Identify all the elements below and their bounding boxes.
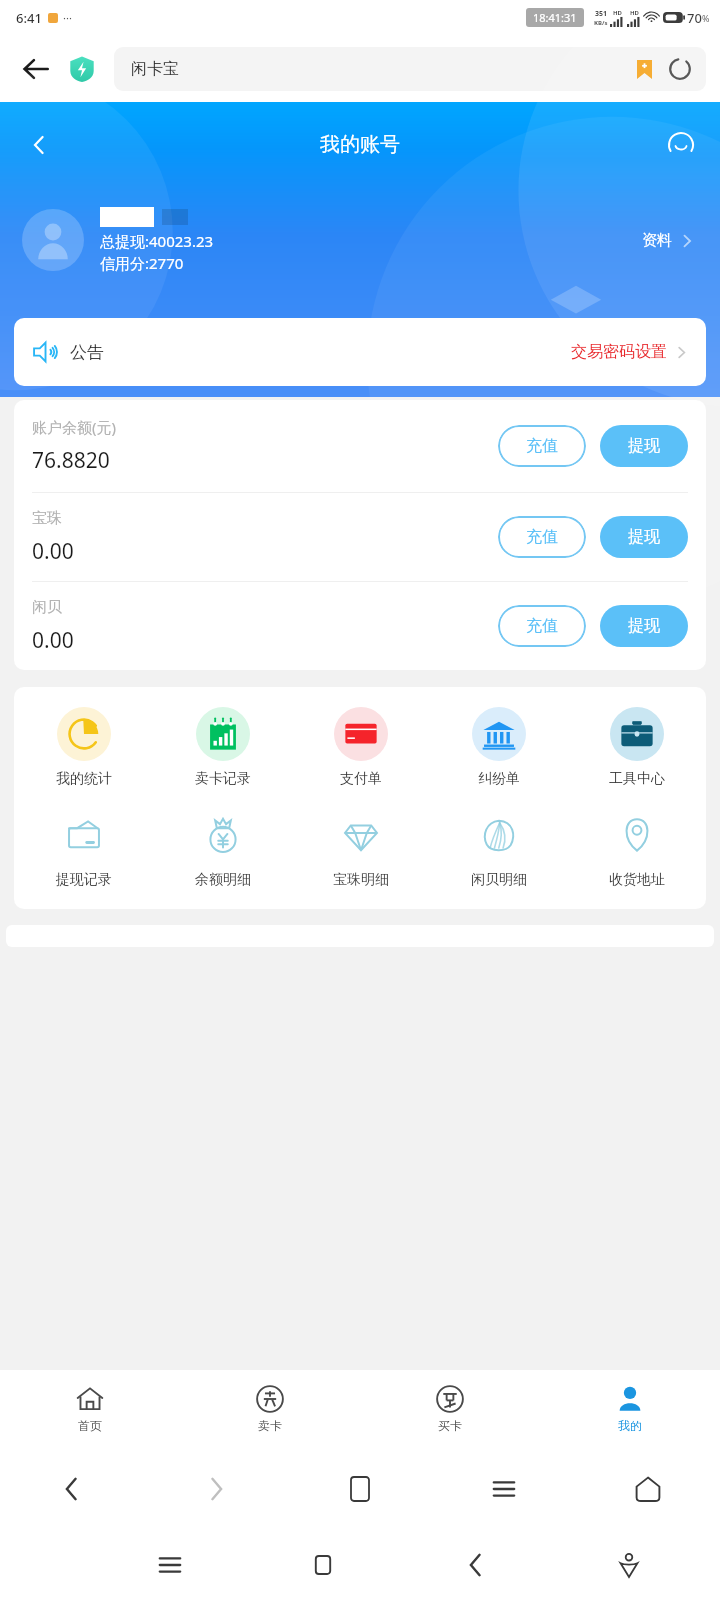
staticText: 交易密码设置 [571,342,667,362]
staticText: 公告 [70,342,104,363]
staticText: 买卡 [438,1418,462,1433]
button[interactable]: 闲卡宝 [114,47,706,91]
button[interactable]: 提现 [600,425,688,467]
button[interactable]: 提现 [600,516,688,558]
button[interactable]: 纠纷单 [430,705,568,790]
button[interactable]: Security [62,49,102,89]
button[interactable]: 首页 [0,1370,180,1448]
staticText: 充值 [526,436,558,456]
button[interactable]: 公告 [14,318,706,386]
staticText: ··· [63,10,72,25]
staticText: HD [630,9,639,17]
button[interactable]: 卖卡记录 [153,705,292,790]
staticText: HD [613,9,622,17]
staticText: 信用分:2770 [100,253,184,273]
button[interactable]: 工具中心 [568,705,706,790]
staticText: 我的统计 [56,770,112,788]
staticText: 闲贝明细 [471,871,527,889]
staticText: 提现记录 [56,871,112,889]
button[interactable]: 余额明细 [153,806,292,891]
staticText: 资料 [642,231,672,250]
button[interactable]: 我的 [540,1370,720,1448]
button[interactable]: Refresh [668,57,692,81]
staticText: 宝珠明细 [333,871,389,889]
staticText: 我的 [618,1418,642,1433]
staticText: 充值 [526,527,558,547]
staticText: 支付单 [340,770,382,788]
staticText: 余额明细 [195,871,251,889]
staticText: 收货地址 [609,871,665,889]
button[interactable]: 支付单 [292,705,430,790]
button[interactable]: 闲贝明细 [430,806,568,891]
button[interactable]: Back [0,1448,144,1530]
button[interactable]: 资料 [634,223,702,258]
staticText: 提现 [628,436,660,456]
button[interactable]: Back [399,1530,552,1600]
staticText: 351 [595,9,608,19]
staticText: 闲卡宝 [131,59,179,79]
button[interactable]: Download [552,1530,705,1600]
staticText: 卖卡记录 [195,770,251,788]
staticText: 提现 [628,616,660,636]
button[interactable]: Avatar [22,209,84,271]
staticText: % [702,12,710,24]
staticText: 充值 [526,616,558,636]
button[interactable]: 我的统计 [14,705,153,790]
staticText: 卖卡 [258,1418,282,1433]
button[interactable]: Home [576,1448,720,1530]
button[interactable]: 提现 [600,605,688,647]
staticText: 76.8820 [32,446,110,475]
button[interactable]: 充值 [498,605,586,647]
staticText: 宝珠 [32,509,62,528]
button[interactable]: 充值 [498,425,586,467]
staticText: 70 [687,9,702,27]
button[interactable]: 收货地址 [568,806,706,891]
button[interactable]: Menu [432,1448,576,1530]
staticText: 我的账号 [320,132,400,157]
button[interactable]: Bookmark [637,60,652,79]
button[interactable]: Back [14,47,58,91]
staticText: 0.00 [32,537,74,566]
staticText: 总提现:40023.23 [100,231,214,251]
button[interactable]: 买卡 [360,1370,540,1448]
button[interactable]: 提现记录 [14,806,153,891]
staticText: 18:41:31 [533,10,577,25]
staticText: 首页 [78,1418,102,1433]
staticText: KB/s [594,19,608,27]
staticText: 账户余额(元) [32,417,117,437]
button[interactable]: 卖卡 [180,1370,360,1448]
button[interactable]: Back [18,124,60,166]
button[interactable]: Tabs [288,1448,432,1530]
staticText: 工具中心 [609,770,665,788]
button[interactable]: Recents [93,1530,246,1600]
button[interactable]: Forward [144,1448,288,1530]
staticText: 6:41 [16,9,42,27]
staticText: 闲贝 [32,598,62,617]
button[interactable]: Customer service [660,124,702,166]
staticText: 0.00 [32,626,74,655]
staticText: 纠纷单 [478,770,520,788]
staticText: 提现 [628,527,660,547]
button[interactable]: 充值 [498,516,586,558]
button[interactable]: Home [246,1530,399,1600]
button[interactable]: 宝珠明细 [292,806,430,891]
